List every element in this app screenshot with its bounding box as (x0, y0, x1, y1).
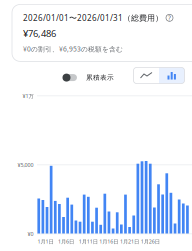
staticText: ¥5,000 (17, 161, 33, 169)
staticText: 1月6日 (58, 238, 74, 245)
staticText: 1月21日 (120, 238, 139, 245)
button[interactable]: 累積表示 (63, 73, 114, 82)
staticText: 1月1日 (37, 238, 53, 245)
staticText: ¥76,486 (23, 27, 56, 39)
staticText: ? (168, 13, 171, 22)
staticText: 1月11日 (79, 238, 98, 245)
staticText: 1月26日 (141, 238, 160, 245)
staticText: 累積表示 (86, 73, 114, 82)
staticText: 2026/01/01〜2026/01/31（総費用） (23, 12, 163, 23)
staticText: 1月16日 (99, 238, 118, 245)
button[interactable]: Line chart (133, 67, 159, 83)
button[interactable]: 2026/01/01〜2026/01/31（総費用） (12, 4, 192, 61)
staticText: ¥0の割引、¥6,953の税額を含む (23, 44, 123, 53)
staticText: ¥0 (27, 230, 33, 238)
button[interactable]: Bar chart (159, 67, 184, 83)
staticText: ¥1万 (22, 92, 33, 100)
